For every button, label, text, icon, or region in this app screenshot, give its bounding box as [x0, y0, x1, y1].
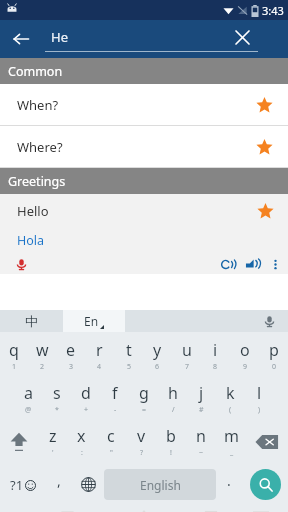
button[interactable]: En: [63, 310, 125, 332]
button[interactable]: English: [104, 469, 216, 500]
button[interactable]: Common: [0, 58, 288, 84]
button[interactable]: k: [216, 377, 245, 420]
button[interactable]: b: [156, 420, 186, 463]
staticText: English: [140, 477, 181, 493]
button[interactable]: More options: [268, 257, 283, 272]
button[interactable]: Clear query: [225, 20, 259, 54]
button[interactable]: Pronounce slowly: [220, 256, 237, 273]
button[interactable]: l: [245, 377, 274, 420]
button[interactable]: Hello: [0, 194, 288, 274]
staticText: 3:43: [262, 3, 284, 18]
other: Voice input: [261, 313, 277, 329]
button[interactable]: u: [172, 334, 201, 377]
staticText: 2: [40, 362, 45, 372]
staticText: r: [96, 339, 103, 361]
button[interactable]: Greetings: [0, 168, 288, 194]
staticText: ": [110, 448, 113, 458]
button[interactable]: Where?: [0, 126, 288, 167]
staticText: =: [142, 405, 147, 415]
button[interactable]: He: [45, 20, 258, 58]
button[interactable]: Favorite: [250, 133, 278, 161]
staticText: 8: [213, 362, 218, 372]
staticText: When?: [17, 96, 59, 114]
button[interactable]: d: [71, 377, 100, 420]
staticText: f: [112, 382, 118, 404]
button[interactable]: Record audio: [12, 255, 30, 273]
button[interactable]: ,: [46, 463, 72, 506]
staticText: @: [25, 405, 32, 415]
button[interactable]: ?1: [0, 463, 46, 506]
button[interactable]: .: [216, 463, 242, 506]
staticText: ': [52, 448, 54, 458]
button[interactable]: Back: [3, 21, 39, 57]
staticText: w: [36, 339, 49, 361]
button[interactable]: Change language: [72, 463, 104, 506]
button[interactable]: x: [67, 420, 96, 463]
button[interactable]: q: [0, 334, 28, 377]
staticText: j: [199, 382, 204, 404]
staticText: m: [224, 425, 239, 447]
staticText: 6: [155, 362, 160, 372]
button[interactable]: w: [28, 334, 56, 377]
button[interactable]: 中: [0, 310, 63, 332]
button[interactable]: y: [143, 334, 172, 377]
button[interactable]: m: [216, 420, 246, 463]
staticText: ?: [140, 448, 144, 458]
staticText: c: [107, 425, 115, 447]
staticText: p: [269, 339, 279, 361]
button[interactable]: a: [14, 377, 42, 420]
staticText: x: [77, 425, 86, 447]
staticText: Hola: [17, 232, 45, 249]
button[interactable]: s: [42, 377, 71, 420]
button[interactable]: e: [56, 334, 85, 377]
staticText: 1: [12, 362, 17, 372]
staticText: /: [172, 405, 175, 415]
button[interactable]: Favorite: [252, 198, 278, 224]
button[interactable]: z: [38, 420, 67, 463]
button[interactable]: i: [201, 334, 230, 377]
staticText: +: [84, 405, 89, 415]
staticText: l: [257, 382, 262, 404]
staticText: o: [240, 339, 250, 361]
button[interactable]: When?: [0, 84, 288, 125]
button[interactable]: f: [100, 377, 129, 420]
button[interactable]: c: [96, 420, 126, 463]
staticText: k: [226, 382, 235, 404]
staticText: *: [55, 405, 59, 415]
staticText: -: [114, 405, 117, 415]
button[interactable]: Favorite: [250, 91, 278, 119]
button[interactable]: t: [114, 334, 143, 377]
staticText: 0: [272, 362, 277, 372]
button[interactable]: p: [259, 334, 288, 377]
button[interactable]: j: [187, 377, 216, 420]
staticText: v: [137, 425, 146, 447]
staticText: a: [24, 382, 33, 404]
button[interactable]: Voice input: [125, 310, 288, 332]
staticText: d: [81, 382, 91, 404]
staticText: He: [51, 28, 68, 46]
button[interactable]: v: [126, 420, 156, 463]
staticText: ): [258, 405, 261, 415]
staticText: u: [182, 339, 192, 361]
button[interactable]: Backspace: [246, 420, 288, 463]
button[interactable]: Pronounce: [244, 256, 261, 273]
staticText: 3: [69, 362, 74, 372]
button[interactable]: r: [85, 334, 114, 377]
staticText: :: [81, 448, 83, 458]
button[interactable]: h: [158, 377, 187, 420]
staticText: ~: [199, 448, 204, 458]
staticText: s: [53, 382, 61, 404]
staticText: i: [213, 339, 218, 361]
staticText: .: [227, 471, 231, 490]
staticText: (: [229, 405, 232, 415]
button[interactable]: Search: [250, 469, 281, 500]
button[interactable]: Shift: [0, 420, 38, 463]
staticText: b: [166, 425, 176, 447]
staticText: Greetings: [8, 173, 66, 190]
staticText: ,: [57, 471, 61, 490]
button[interactable]: g: [129, 377, 158, 420]
staticText: Hello: [17, 202, 49, 220]
button[interactable]: n: [186, 420, 216, 463]
staticText: n: [196, 425, 206, 447]
button[interactable]: o: [230, 334, 259, 377]
